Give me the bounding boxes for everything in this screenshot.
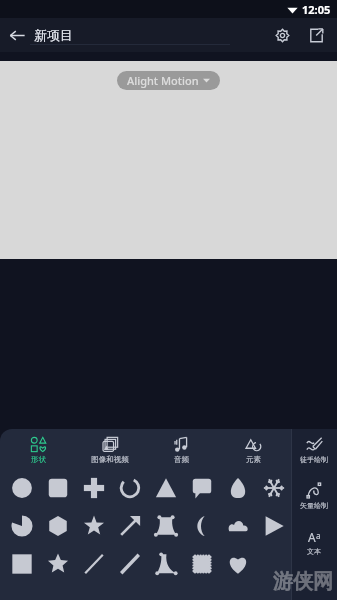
staticText: 音频 [174, 455, 189, 464]
staticText: 形状 [31, 455, 46, 464]
button[interactable]: Shape 13 [184, 511, 220, 541]
staticText: 游侠网 [273, 569, 333, 594]
button[interactable]: Shape 22 [220, 549, 256, 579]
staticText: a [316, 530, 321, 541]
button[interactable]: Shape 0 [4, 473, 40, 503]
button[interactable]: Shape 11 [112, 511, 148, 541]
button[interactable]: Back [0, 18, 34, 52]
staticText: 徒手绘制 [300, 455, 328, 464]
button[interactable]: Skip to end [200, 538, 228, 566]
button[interactable]: Bookmark [291, 538, 319, 566]
button[interactable]: Shape 17 [40, 549, 76, 579]
button[interactable]: 徒手绘制 [291, 433, 337, 467]
button[interactable]: 音频 [148, 429, 214, 467]
button[interactable]: Shape 1 [40, 473, 76, 503]
button[interactable]: 矢量绘制 [291, 479, 337, 513]
button[interactable]: Shape 20 [148, 549, 184, 579]
button[interactable]: Undo [18, 538, 46, 566]
button[interactable]: Export [299, 18, 333, 52]
staticText: 元素 [246, 455, 261, 464]
staticText: 矢量绘制 [300, 501, 328, 510]
staticText: 文本 [307, 547, 321, 556]
button[interactable]: 元素 [220, 429, 286, 467]
button[interactable]: Shape 12 [148, 511, 184, 541]
button[interactable]: Settings [265, 18, 299, 52]
button[interactable]: Shape 4 [148, 473, 184, 503]
button[interactable]: Shape 10 [76, 511, 112, 541]
button[interactable]: Alight Motion [117, 71, 220, 90]
button[interactable]: Shape 14 [220, 511, 256, 541]
button[interactable]: Shape 7 [256, 473, 291, 503]
button[interactable]: 形状 [5, 429, 71, 467]
button[interactable]: Shape 6 [220, 473, 256, 503]
staticText: 图像和视频 [91, 455, 129, 464]
button[interactable]: Play [155, 538, 183, 566]
button[interactable]: A [291, 525, 337, 559]
button[interactable]: Shape 16 [4, 549, 40, 579]
staticText: A [308, 529, 316, 545]
staticText: 新项目 [34, 27, 73, 43]
button[interactable]: Shape 3 [112, 473, 148, 503]
button[interactable]: Shape 8 [4, 511, 40, 541]
button[interactable]: Shape 9 [40, 511, 76, 541]
button[interactable]: Shape 5 [184, 473, 220, 503]
button[interactable]: Shape 18 [76, 549, 112, 579]
button[interactable]: Redo [64, 538, 92, 566]
staticText: Alight Motion [127, 73, 199, 88]
button[interactable]: Shape 19 [112, 549, 148, 579]
staticText: 12:05 [302, 2, 331, 17]
button[interactable]: 图像和视频 [77, 429, 143, 467]
button[interactable]: Shape 15 [256, 511, 291, 541]
button[interactable]: Shape 23 [256, 549, 291, 579]
button[interactable]: Shape 2 [76, 473, 112, 503]
button[interactable]: Skip to start [109, 538, 137, 566]
button[interactable]: Shape 21 [184, 549, 220, 579]
button[interactable]: 新项目 [34, 27, 73, 43]
